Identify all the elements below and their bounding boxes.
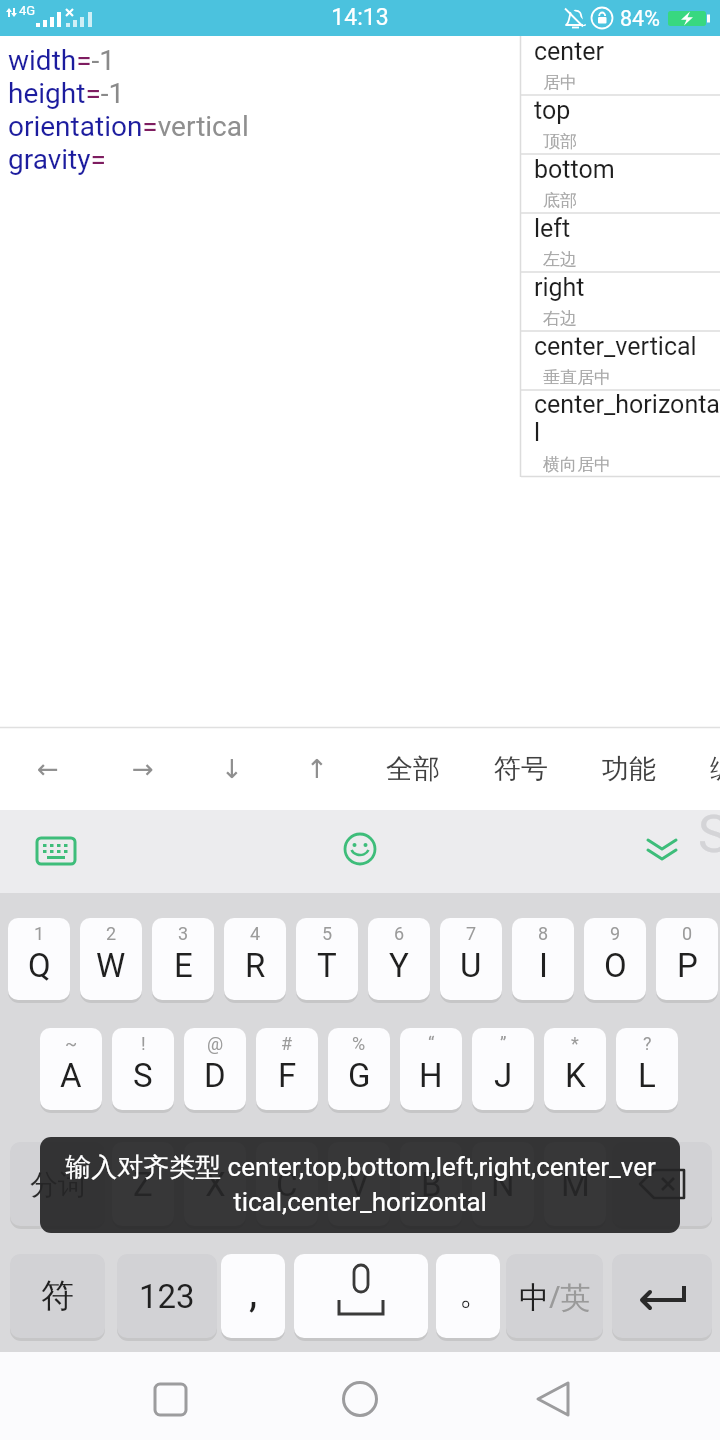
- staticText: left: [534, 214, 571, 243]
- staticText: 9: [610, 923, 621, 944]
- staticText: E: [174, 946, 193, 985]
- button[interactable]: [331, 820, 389, 880]
- button[interactable]: 中/英: [506, 1254, 603, 1338]
- button[interactable]: [612, 1142, 712, 1226]
- staticText: 垂直居中: [543, 367, 611, 388]
- staticText: 2: [106, 923, 117, 944]
- button[interactable]: *: [544, 1028, 606, 1110]
- staticText: Q: [28, 946, 51, 985]
- button[interactable]: ↑: [277, 727, 357, 810]
- button[interactable]: center_horizonta: [520, 390, 720, 477]
- button[interactable]: 。: [436, 1254, 500, 1338]
- button[interactable]: X: [184, 1142, 246, 1226]
- button[interactable]: ,: [221, 1254, 285, 1338]
- staticText: C: [276, 1165, 298, 1204]
- button[interactable]: 编辑: [692, 727, 720, 810]
- button[interactable]: 2: [80, 918, 142, 1000]
- button[interactable]: 3: [152, 918, 214, 1000]
- staticText: width=-1: [8, 44, 116, 77]
- button[interactable]: 1: [8, 918, 70, 1000]
- button[interactable]: ↓: [192, 727, 272, 810]
- button[interactable]: %: [328, 1028, 390, 1110]
- staticText: ↑: [306, 754, 328, 784]
- button[interactable]: @: [184, 1028, 246, 1110]
- staticText: gravity=: [8, 143, 106, 176]
- staticText: 6: [394, 923, 405, 944]
- staticText: 居中: [543, 72, 577, 93]
- staticText: center_horizonta: [534, 390, 720, 419]
- button[interactable]: 9: [584, 918, 646, 1000]
- button[interactable]: B: [400, 1142, 462, 1226]
- staticText: @: [207, 1033, 224, 1054]
- staticText: 中/英: [519, 1276, 591, 1317]
- button[interactable]: “: [400, 1028, 462, 1110]
- button[interactable]: →: [103, 727, 183, 810]
- button[interactable]: center_vertical: [520, 331, 720, 390]
- staticText: 8: [538, 923, 549, 944]
- button[interactable]: ”: [472, 1028, 534, 1110]
- staticText: ←: [37, 754, 59, 784]
- staticText: “: [428, 1033, 435, 1054]
- staticText: I: [539, 946, 548, 985]
- button[interactable]: 6: [368, 918, 430, 1000]
- button[interactable]: V: [328, 1142, 390, 1226]
- staticText: 4: [250, 923, 261, 944]
- button[interactable]: 功能: [584, 727, 674, 810]
- button[interactable]: left: [520, 213, 720, 272]
- button[interactable]: 5: [296, 918, 358, 1000]
- staticText: ?: [643, 1033, 652, 1054]
- button[interactable]: top: [520, 95, 720, 154]
- button[interactable]: N: [472, 1142, 534, 1226]
- button[interactable]: 123: [117, 1254, 217, 1338]
- button[interactable]: 全部: [368, 727, 458, 810]
- button[interactable]: [320, 1361, 400, 1431]
- staticText: 4G: [19, 3, 36, 18]
- staticText: 输入对齐类型 center,top,bottom,left,right,cent…: [65, 1151, 656, 1184]
- button[interactable]: 0: [656, 918, 718, 1000]
- button[interactable]: ?: [616, 1028, 678, 1110]
- button[interactable]: 8: [512, 918, 574, 1000]
- button[interactable]: ~: [40, 1028, 102, 1110]
- staticText: 14:13: [331, 4, 389, 31]
- staticText: ~: [65, 1033, 78, 1054]
- button[interactable]: [612, 1254, 712, 1338]
- staticText: M: [561, 1165, 590, 1204]
- staticText: 符: [41, 1275, 74, 1317]
- button[interactable]: C: [256, 1142, 318, 1226]
- staticText: T: [317, 946, 337, 985]
- button[interactable]: center: [520, 36, 720, 95]
- staticText: K: [565, 1056, 586, 1095]
- staticText: !: [141, 1033, 146, 1054]
- staticText: center_vertical: [534, 332, 697, 361]
- button[interactable]: Z: [112, 1142, 174, 1226]
- button[interactable]: [294, 1254, 428, 1338]
- button[interactable]: #: [256, 1028, 318, 1110]
- staticText: 123: [139, 1277, 195, 1316]
- button[interactable]: [27, 825, 85, 877]
- button[interactable]: !: [112, 1028, 174, 1110]
- button[interactable]: 符: [10, 1254, 105, 1338]
- staticText: height=-1: [8, 77, 125, 110]
- button[interactable]: bottom: [520, 154, 720, 213]
- staticText: 84%: [620, 6, 660, 31]
- staticText: *: [571, 1033, 579, 1054]
- staticText: 功能: [602, 752, 656, 786]
- staticText: V: [348, 1165, 370, 1204]
- staticText: 左边: [543, 249, 577, 270]
- staticText: center: [534, 37, 605, 66]
- staticText: 横向居中: [543, 454, 611, 475]
- staticText: X: [205, 1165, 226, 1204]
- staticText: H: [419, 1056, 443, 1095]
- staticText: 顶部: [543, 131, 577, 152]
- button[interactable]: 符号: [476, 727, 566, 810]
- button[interactable]: ←: [8, 727, 88, 810]
- button[interactable]: [130, 1361, 210, 1431]
- staticText: L: [638, 1056, 656, 1095]
- button[interactable]: 4: [224, 918, 286, 1000]
- button[interactable]: 7: [440, 918, 502, 1000]
- button[interactable]: M: [544, 1142, 606, 1226]
- button[interactable]: 分词: [10, 1142, 105, 1226]
- button[interactable]: [513, 1361, 593, 1431]
- button[interactable]: [633, 820, 691, 880]
- button[interactable]: right: [520, 272, 720, 331]
